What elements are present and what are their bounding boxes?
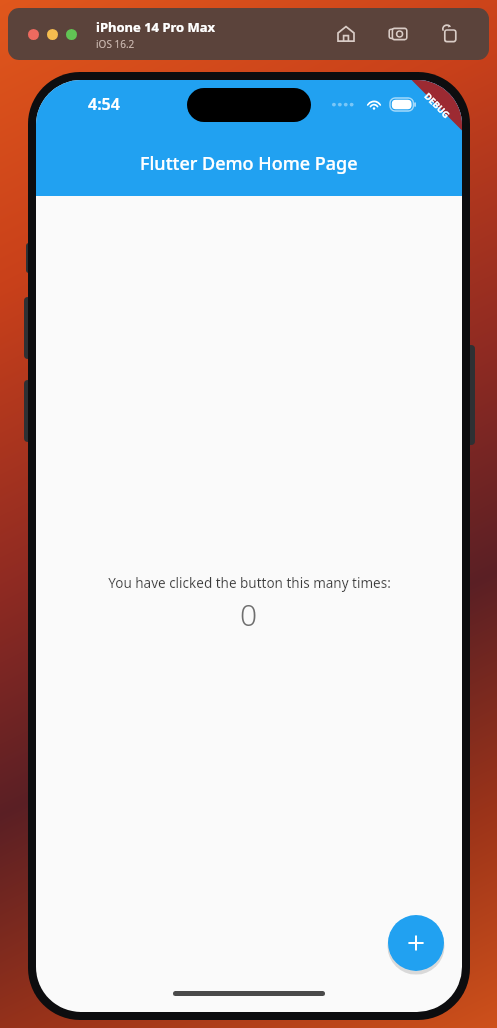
staticText: 0 (240, 594, 258, 635)
staticText: DEBUG (422, 90, 453, 120)
button[interactable]: Increment (388, 915, 444, 971)
staticText: iOS 16.2 (96, 37, 135, 51)
button[interactable] (47, 29, 58, 40)
button[interactable]: Rotate (437, 21, 463, 47)
staticText: Flutter Demo Home Page (140, 151, 358, 176)
button[interactable] (28, 29, 39, 40)
button[interactable]: Screenshot (385, 21, 411, 47)
staticText: 4:54 (88, 93, 120, 115)
button[interactable] (66, 29, 77, 40)
button[interactable]: Home (333, 21, 359, 47)
staticText: You have clicked the button this many ti… (108, 574, 391, 592)
staticText: iPhone 14 Pro Max (96, 18, 216, 36)
